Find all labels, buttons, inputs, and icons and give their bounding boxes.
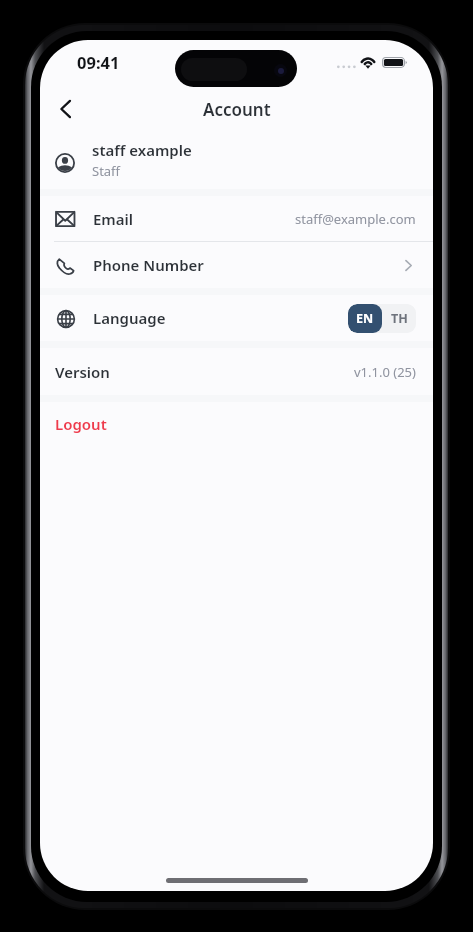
button[interactable]: TH — [382, 304, 416, 333]
staticText: Language — [93, 308, 166, 328]
button[interactable]: EN — [348, 304, 382, 333]
button[interactable]: Logout — [40, 402, 433, 445]
staticText: Logout — [55, 414, 107, 434]
staticText: TH — [391, 310, 408, 327]
staticText: Phone Number — [93, 255, 204, 275]
button[interactable]: Email — [40, 196, 433, 241]
staticText: v1.1.0 (25) — [354, 363, 416, 381]
staticText: 09:41 — [77, 51, 120, 73]
staticText: Staff — [92, 162, 121, 180]
staticText: Account — [203, 98, 271, 121]
button[interactable]: Back — [44, 87, 88, 131]
button[interactable]: staff example — [40, 131, 433, 189]
button[interactable]: Phone Number — [40, 242, 433, 288]
staticText: staff example — [92, 140, 192, 160]
staticText: Version — [55, 362, 110, 382]
staticText: staff@example.com — [295, 210, 416, 228]
staticText: Email — [93, 209, 134, 229]
staticText: EN — [356, 310, 374, 327]
